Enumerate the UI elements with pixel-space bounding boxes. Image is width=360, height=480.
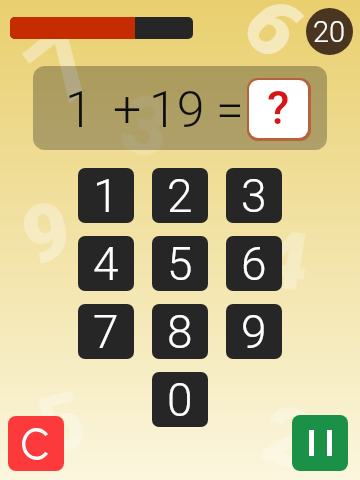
staticText: 8	[167, 305, 193, 359]
button[interactable]: 4	[78, 236, 134, 291]
button[interactable]: 0	[152, 372, 208, 427]
button[interactable]: 6	[226, 236, 282, 291]
button[interactable]: 9	[226, 304, 282, 359]
staticText: 3	[241, 169, 267, 223]
staticText: 7	[93, 305, 119, 359]
staticText: 6	[241, 237, 267, 291]
staticText: 2	[252, 386, 323, 480]
staticText: 5	[27, 373, 96, 475]
staticText: +	[113, 81, 142, 140]
staticText: 1	[65, 81, 93, 140]
staticText: 5	[167, 237, 193, 291]
staticText: 7	[7, 5, 121, 128]
button[interactable]: 3	[226, 168, 282, 223]
staticText: 20	[313, 15, 346, 49]
button[interactable]: 8	[152, 304, 208, 359]
staticText: 3	[111, 76, 180, 178]
staticText: 0	[167, 373, 193, 427]
button[interactable]: 7	[78, 304, 134, 359]
staticText: 19	[149, 81, 205, 140]
staticText: 1	[93, 169, 119, 223]
staticText: 4	[93, 237, 119, 291]
staticText: 9	[241, 305, 267, 359]
button[interactable]: Clear	[8, 416, 64, 471]
button[interactable]: Answer	[247, 78, 311, 141]
staticText: 4	[254, 211, 317, 311]
staticText: =	[216, 81, 244, 140]
staticText: ?	[267, 81, 290, 135]
button[interactable]: 20	[306, 8, 353, 55]
button[interactable]: Pause	[292, 415, 348, 471]
staticText: 2	[167, 169, 193, 223]
button[interactable]: Time remaining	[10, 17, 193, 39]
button[interactable]: 2	[152, 168, 208, 223]
button[interactable]: 5	[152, 236, 208, 291]
button[interactable]: 1	[78, 168, 134, 223]
staticText: 6	[223, 0, 324, 77]
staticText: 9	[14, 183, 79, 285]
